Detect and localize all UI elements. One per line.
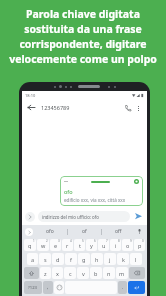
button[interactable]: n [103,267,115,279]
button[interactable]: More options [133,103,143,113]
button[interactable]: Voice input [135,227,144,236]
staticText: q [28,242,32,249]
button[interactable]: f [65,253,77,265]
staticText: off [115,228,122,235]
staticText: u [102,242,106,249]
button[interactable]: q [24,239,36,251]
button[interactable]: e [50,239,61,251]
button[interactable]: r [62,239,73,251]
button[interactable]: z [40,267,51,279]
button[interactable]: k [117,253,129,265]
staticText: a [31,256,35,263]
button[interactable]: Back [26,102,37,113]
button[interactable]: , [43,281,53,294]
staticText: ofo [64,188,73,195]
button[interactable]: l [130,253,142,265]
button[interactable]: m [116,267,128,279]
button[interactable]: h [91,253,103,265]
staticText: d [56,256,60,263]
button[interactable]: Expand suggestions [25,228,33,236]
button[interactable]: p [134,239,145,251]
staticText: j [109,256,111,263]
staticText: ofo [46,228,54,235]
button[interactable]: o [122,239,133,251]
button[interactable]: indirizzo del mio ufficio: ofo [38,211,130,222]
staticText: n [107,270,111,277]
button[interactable]: y [86,239,97,251]
staticText: 5 [82,239,84,243]
button[interactable]: Send [133,211,144,222]
staticText: Parola chiave digitata sostituita da una… [9,7,157,66]
staticText: c [69,270,72,277]
staticText: x [56,270,59,277]
staticText: v [82,270,85,277]
button[interactable]: a [27,253,38,265]
staticText: 18:10 [25,93,36,98]
staticText: 2 [46,239,48,243]
button[interactable]: g [78,253,90,265]
button[interactable]: u [98,239,109,251]
button[interactable]: v [77,267,89,279]
staticText: m [119,270,125,277]
staticText: ?123 [28,285,38,291]
button[interactable]: j [104,253,116,265]
staticText: 3 [58,239,60,243]
button[interactable]: . [118,281,127,294]
staticText: edificio xxx, via xxx, città xxx [64,197,126,203]
staticText: t [79,242,81,249]
button[interactable]: of [68,225,101,238]
button[interactable]: Backspace [129,267,145,279]
staticText: l [135,256,137,263]
staticText: h [95,256,99,263]
button[interactable]: x [52,267,63,279]
button[interactable]: Enter [128,281,145,294]
staticText: 6 [94,239,96,243]
button[interactable]: Shift [24,267,39,279]
staticText: 123456789 [41,104,70,111]
button[interactable]: ofo [60,176,143,206]
staticText: f [70,256,72,263]
button[interactable]: Expand [25,212,35,222]
button[interactable]: off [102,225,135,238]
staticText: s [44,256,47,263]
staticText: k [122,256,125,263]
staticText: y [90,242,93,249]
button[interactable]: d [52,253,64,265]
staticText: 4 [70,239,72,243]
staticText: g [82,256,86,263]
staticText: p [138,242,142,249]
button[interactable]: s [39,253,51,265]
button[interactable]: c [64,267,76,279]
staticText: indirizzo del mio ufficio: ofo [42,214,99,220]
staticText: b [94,270,98,277]
staticText: 9 [130,239,132,243]
staticText: 1 [33,239,35,243]
button[interactable]: w [37,239,49,251]
staticText: o [126,242,130,249]
staticText: i [115,242,117,249]
button[interactable]: b [90,267,102,279]
button[interactable]: ?123 [24,281,42,294]
button[interactable]: Emoji [54,281,64,294]
button[interactable]: ofo [33,225,67,238]
button[interactable]: Call [122,102,133,113]
staticText: z [44,270,47,277]
button[interactable]: t [74,239,85,251]
staticText: . [122,284,124,291]
staticText: 7 [106,239,108,243]
button[interactable]: i [110,239,121,251]
staticText: w [41,242,46,249]
staticText: 8 [118,239,120,243]
staticText: , [47,284,49,291]
staticText: 0 [142,239,144,243]
staticText: e [54,242,58,249]
staticText: of [82,228,87,235]
staticText: r [66,242,69,249]
